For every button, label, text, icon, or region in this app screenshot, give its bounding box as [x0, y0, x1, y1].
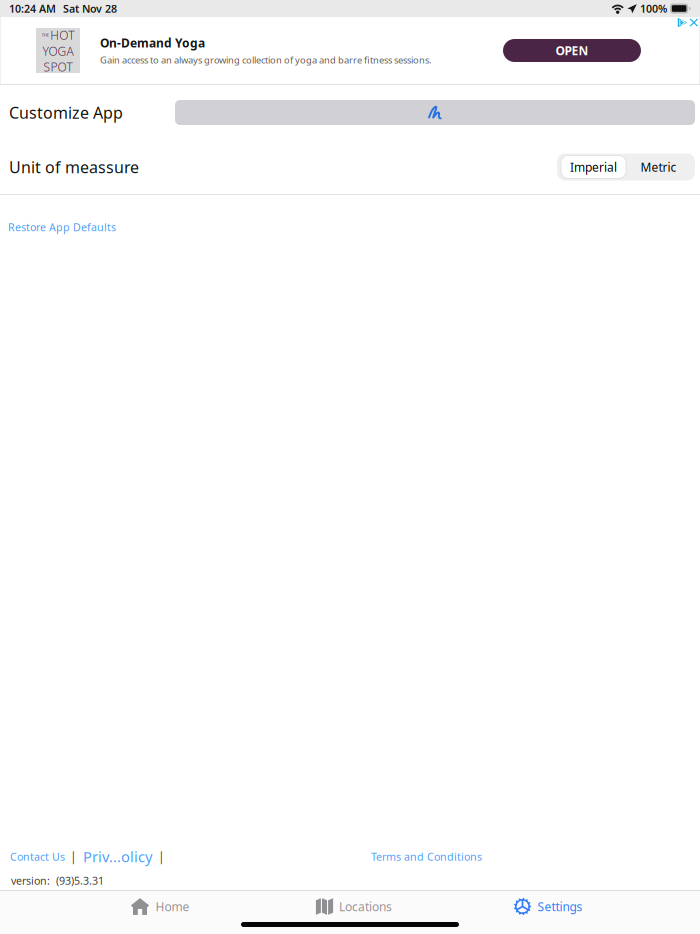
button[interactable]: Contact Us — [10, 849, 65, 864]
button[interactable]: Customize appearance — [175, 100, 695, 125]
staticText: Home — [155, 898, 189, 914]
staticText: OPEN — [555, 42, 588, 58]
button[interactable]: Metric — [626, 155, 691, 178]
staticText: Gain access to an always growing collect… — [100, 54, 432, 66]
staticText: Restore App Defaults — [8, 220, 116, 234]
staticText: version: (93)5.3.31 — [11, 873, 104, 888]
staticText: | — [70, 848, 77, 864]
button[interactable]: Terms and Conditions — [371, 849, 482, 864]
button[interactable]: OPEN — [503, 39, 641, 62]
button[interactable]: Imperial — [561, 155, 626, 178]
staticText: Priv...olicy — [83, 847, 152, 866]
staticText: Imperial — [570, 159, 617, 175]
button[interactable]: Settings — [480, 891, 616, 922]
button[interactable]: Home — [92, 891, 228, 922]
staticText: THE — [42, 32, 49, 38]
staticText: HOT — [50, 27, 74, 43]
staticText: Settings — [537, 898, 582, 914]
staticText: | — [158, 848, 165, 864]
button[interactable]: Restore App Defaults — [8, 220, 116, 234]
staticText: Terms and Conditions — [371, 849, 482, 864]
staticText: Contact Us — [10, 849, 65, 864]
button[interactable]: Priv...olicy — [83, 847, 152, 866]
staticText: SPOT — [43, 59, 72, 75]
staticText: Locations — [339, 898, 392, 914]
staticText: Customize App — [9, 102, 123, 123]
staticText: 10:24 AM — [9, 1, 56, 16]
staticText: On-Demand Yoga — [100, 35, 205, 51]
button[interactable]: Locations — [286, 891, 422, 922]
staticText: Sat Nov 28 — [63, 1, 117, 16]
staticText: Metric — [640, 159, 676, 175]
staticText: Unit of meassure — [9, 156, 139, 178]
staticText: YOGA — [42, 43, 73, 59]
staticText: 100% — [640, 1, 667, 16]
